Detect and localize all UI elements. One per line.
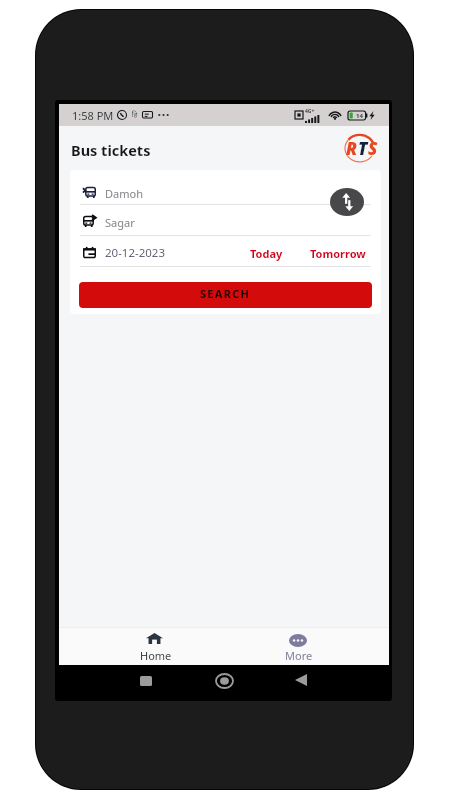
staticText: S	[368, 137, 378, 160]
staticText: 1:58 PM	[72, 108, 114, 123]
staticText: R	[346, 137, 358, 160]
staticText: Sagar	[105, 215, 135, 230]
button[interactable]: Home	[84, 627, 227, 665]
button[interactable]: More	[227, 627, 371, 665]
staticText: 4G+	[305, 108, 315, 115]
staticText: 14	[356, 112, 363, 120]
staticText: Damoh	[105, 186, 143, 201]
button[interactable]: Tomorrow	[310, 246, 366, 261]
staticText: Bus tickets	[71, 140, 151, 160]
button[interactable]: Home	[210, 667, 238, 695]
staticText: More	[285, 648, 313, 663]
staticText: 20-12-2023	[105, 245, 166, 261]
staticText: Tomorrow	[310, 246, 366, 261]
button[interactable]: SEARCH	[79, 282, 372, 308]
button[interactable]: Recents	[134, 669, 158, 693]
staticText: Home	[140, 648, 172, 663]
button[interactable]: Sagar	[80, 205, 371, 235]
button[interactable]: Damoh	[80, 178, 371, 204]
button[interactable]: Swap source and destination	[330, 188, 364, 216]
button[interactable]: Today	[250, 246, 283, 261]
staticText: T	[358, 137, 368, 160]
staticText: Today	[250, 246, 283, 261]
staticText: हि	[132, 110, 138, 120]
staticText: SEARCH	[200, 286, 251, 301]
button[interactable]: Back	[289, 668, 313, 692]
